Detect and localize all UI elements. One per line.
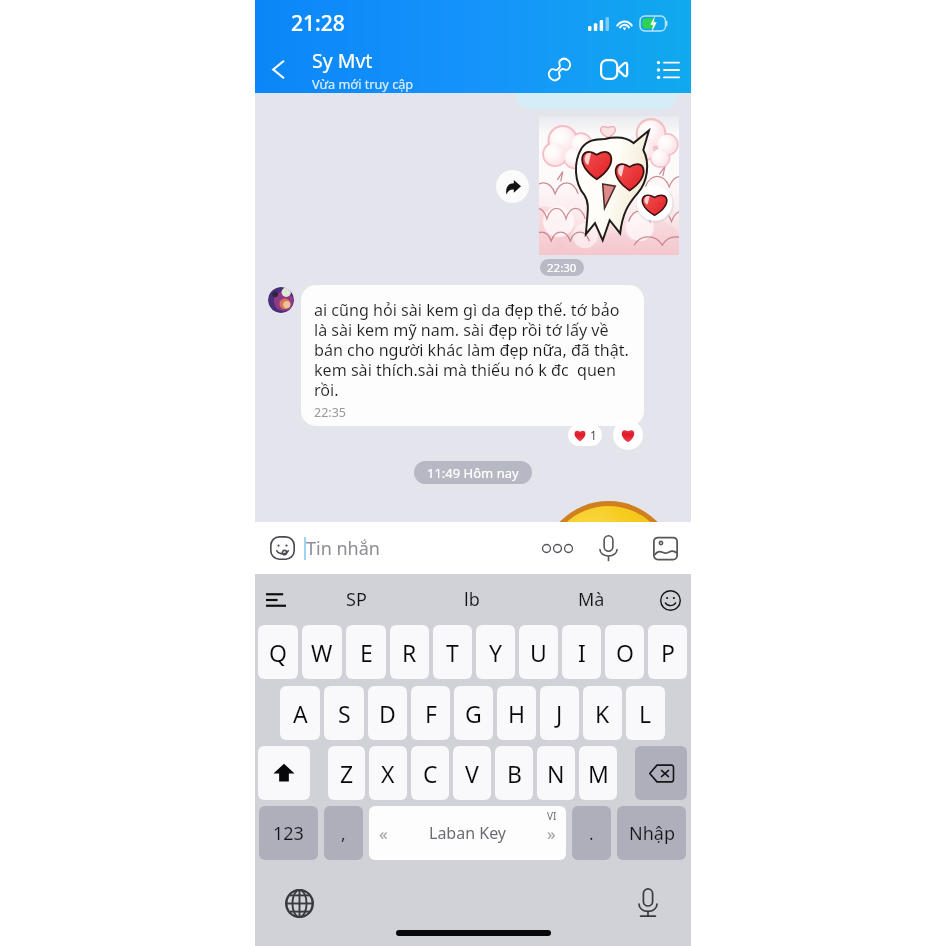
button[interactable]: V bbox=[453, 746, 491, 800]
button[interactable]: More options bbox=[534, 522, 580, 574]
button[interactable]: Voice message bbox=[587, 522, 629, 574]
button[interactable]: I bbox=[562, 625, 601, 679]
staticText: lb bbox=[464, 587, 480, 612]
button[interactable]: Laban Key bbox=[369, 806, 566, 860]
button[interactable]: S bbox=[324, 686, 364, 740]
staticText: Q bbox=[269, 637, 287, 668]
button[interactable]: Shift bbox=[258, 746, 310, 800]
staticText: , bbox=[341, 822, 346, 845]
button[interactable]: C bbox=[411, 746, 449, 800]
button[interactable]: J bbox=[540, 686, 579, 740]
button[interactable]: Y bbox=[476, 625, 515, 679]
button[interactable]: Forward bbox=[496, 170, 529, 203]
button[interactable]: U bbox=[519, 625, 558, 679]
staticText: ai cũng hỏi sài kem gì da đẹp thế. tớ bả… bbox=[314, 299, 629, 400]
staticText: T bbox=[446, 637, 459, 668]
staticText: X bbox=[381, 758, 395, 789]
staticText: 123 bbox=[273, 821, 304, 846]
button[interactable]: React bbox=[613, 420, 643, 450]
staticText: W bbox=[311, 637, 333, 668]
staticText: G bbox=[465, 698, 482, 729]
staticText: » bbox=[547, 822, 556, 845]
staticText: E bbox=[360, 637, 373, 668]
button[interactable]: F bbox=[411, 686, 450, 740]
staticText: M bbox=[588, 758, 609, 789]
button[interactable]: G bbox=[454, 686, 493, 740]
button[interactable]: 1 bbox=[568, 424, 602, 446]
button[interactable]: , bbox=[324, 806, 363, 860]
button[interactable]: Back bbox=[255, 46, 301, 93]
staticText: 22:30 bbox=[547, 260, 577, 276]
staticText: C bbox=[423, 758, 438, 789]
button[interactable]: L bbox=[626, 686, 665, 740]
button[interactable]: M bbox=[579, 746, 617, 800]
staticText: 11:49 Hôm nay bbox=[427, 464, 519, 482]
button[interactable]: Change language bbox=[279, 883, 319, 923]
button[interactable]: O bbox=[605, 625, 644, 679]
staticText: O bbox=[616, 637, 634, 668]
button[interactable]: A bbox=[280, 686, 320, 740]
button[interactable]: . bbox=[572, 806, 611, 860]
staticText: VI bbox=[547, 809, 557, 823]
button[interactable] bbox=[268, 287, 294, 313]
staticText: Sy Mvt bbox=[312, 47, 373, 74]
button[interactable]: X bbox=[369, 746, 407, 800]
button[interactable]: Video call bbox=[590, 46, 637, 93]
staticText: D bbox=[379, 698, 396, 729]
staticText: R bbox=[402, 637, 417, 668]
button[interactable] bbox=[539, 116, 679, 255]
button[interactable]: T bbox=[433, 625, 472, 679]
staticText: . bbox=[589, 822, 594, 845]
button[interactable]: 123 bbox=[259, 806, 318, 860]
button[interactable]: K bbox=[583, 686, 622, 740]
staticText: I bbox=[578, 637, 586, 668]
staticText: Tin nhắn bbox=[306, 536, 380, 561]
staticText: Vừa mới truy cập bbox=[312, 75, 414, 92]
button[interactable]: B bbox=[495, 746, 533, 800]
staticText: K bbox=[595, 698, 610, 729]
button[interactable]: Keyboard settings bbox=[257, 581, 295, 619]
button[interactable]: Mà bbox=[546, 574, 636, 625]
button[interactable]: Emoji keyboard bbox=[651, 581, 689, 619]
staticText: Nhập bbox=[629, 821, 675, 846]
staticText: F bbox=[425, 698, 437, 729]
button[interactable]: H bbox=[497, 686, 536, 740]
button[interactable]: W bbox=[302, 625, 342, 679]
staticText: SP bbox=[346, 587, 367, 612]
staticText: S bbox=[338, 698, 351, 729]
staticText: P bbox=[661, 637, 675, 668]
button[interactable]: lb bbox=[427, 574, 517, 625]
button[interactable]: Menu bbox=[644, 46, 691, 93]
button[interactable]: E bbox=[346, 625, 386, 679]
button[interactable]: D bbox=[368, 686, 407, 740]
staticText: Z bbox=[340, 758, 354, 789]
button[interactable]: Voice input bbox=[628, 883, 668, 923]
staticText: A bbox=[293, 698, 308, 729]
button[interactable]: Q bbox=[258, 625, 298, 679]
button[interactable]: Send image bbox=[644, 522, 686, 574]
button[interactable]: ai cũng hỏi sài kem gì da đẹp thế. tớ bả… bbox=[301, 285, 644, 426]
staticText: L bbox=[639, 698, 652, 729]
staticText: 21:28 bbox=[291, 9, 345, 38]
button[interactable]: N bbox=[537, 746, 575, 800]
staticText: Mà bbox=[578, 587, 605, 612]
staticText: 1 bbox=[590, 427, 597, 443]
button[interactable]: Nhập bbox=[617, 806, 686, 860]
staticText: 22:35 bbox=[314, 404, 346, 421]
button[interactable]: Emoji bbox=[258, 522, 306, 574]
staticText: H bbox=[508, 698, 526, 729]
staticText: « bbox=[379, 822, 388, 845]
staticText: Laban Key bbox=[429, 822, 506, 844]
button[interactable]: Call bbox=[536, 46, 583, 93]
button[interactable]: Z bbox=[328, 746, 365, 800]
button[interactable]: SP bbox=[311, 574, 401, 625]
button[interactable]: Backspace bbox=[635, 746, 687, 800]
staticText: N bbox=[547, 758, 565, 789]
button[interactable]: P bbox=[648, 625, 687, 679]
staticText: B bbox=[507, 758, 522, 789]
staticText: J bbox=[556, 698, 563, 729]
button[interactable]: R bbox=[390, 625, 429, 679]
staticText: V bbox=[465, 758, 479, 789]
staticText: U bbox=[530, 637, 547, 668]
